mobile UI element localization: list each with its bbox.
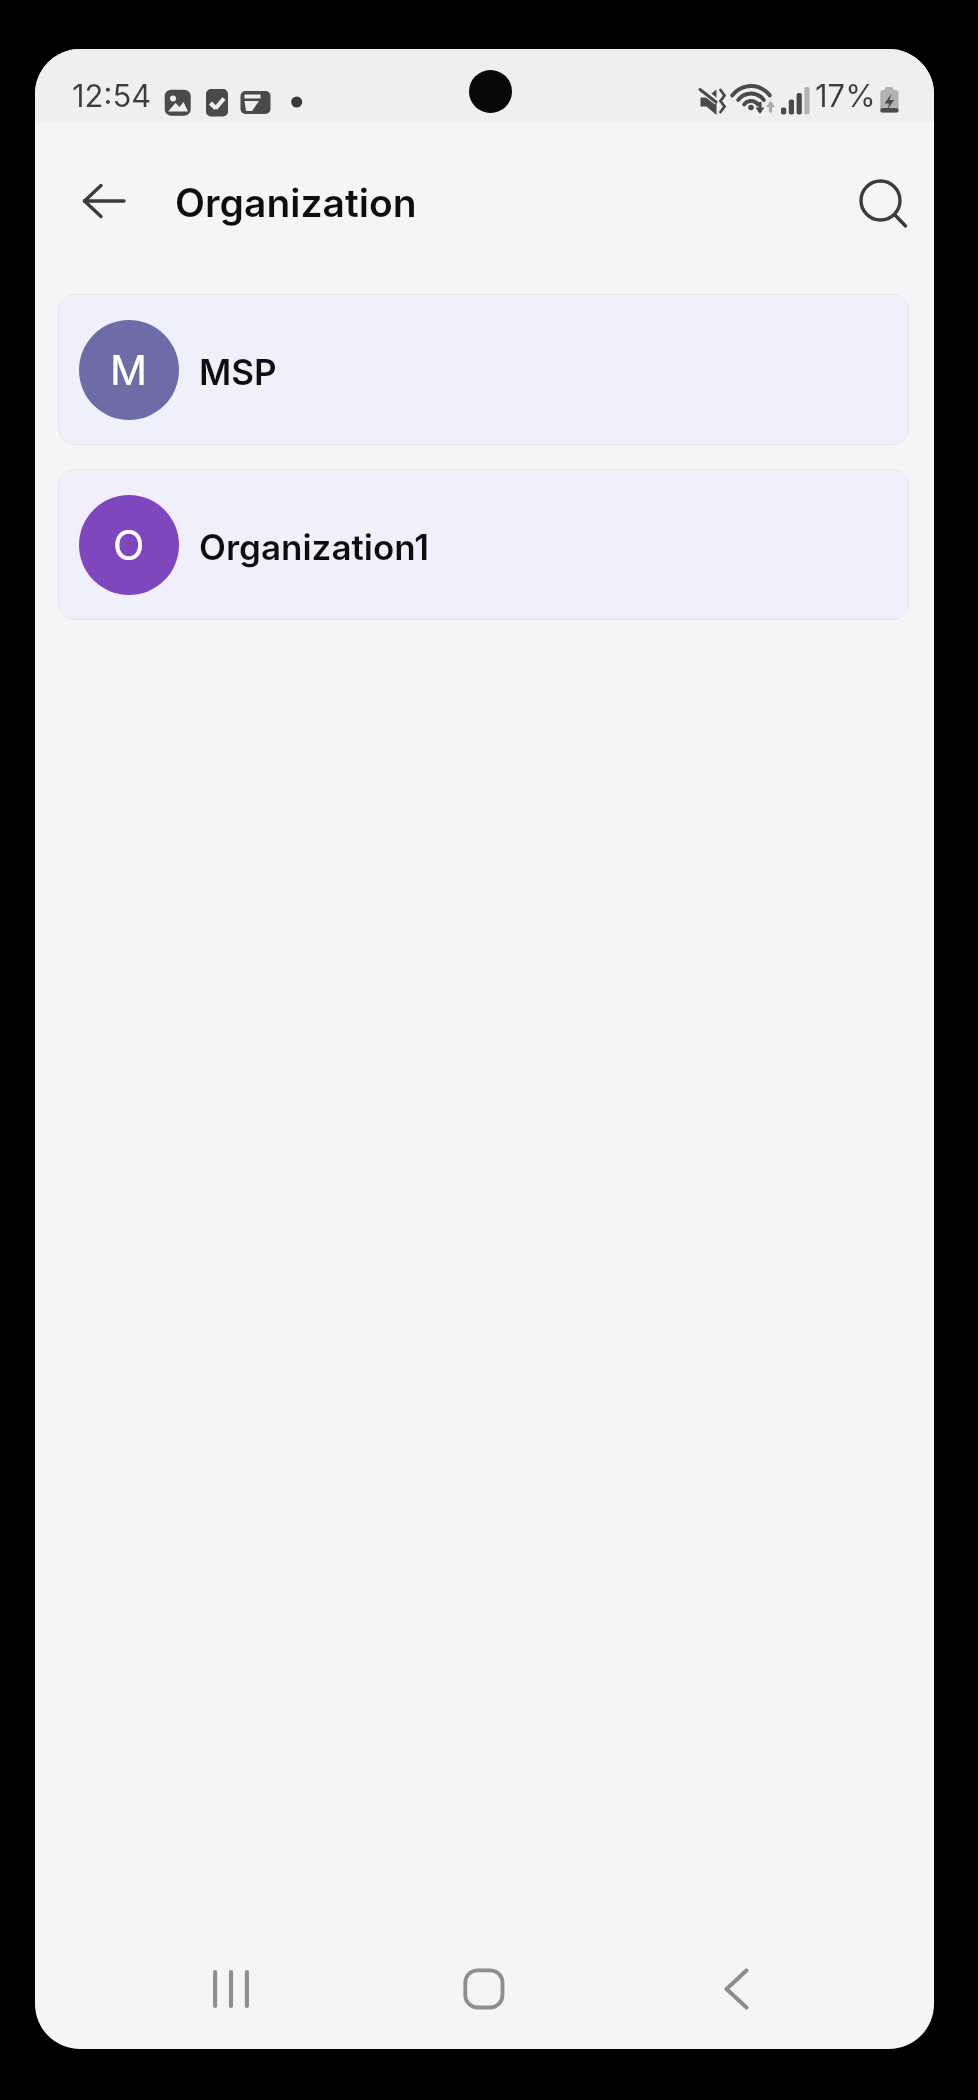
button[interactable]: Recent apps: [183, 1939, 283, 2039]
staticText: 12:54: [72, 77, 152, 115]
button[interactable]: Back: [687, 1939, 787, 2039]
button[interactable]: M: [58, 294, 909, 445]
button[interactable]: Home: [434, 1939, 534, 2039]
staticText: O: [113, 520, 145, 570]
staticText: MSP: [199, 351, 277, 393]
button[interactable]: Search: [834, 154, 934, 254]
button[interactable]: O: [58, 469, 909, 620]
staticText: 17%: [815, 77, 876, 115]
staticText: M: [110, 345, 148, 395]
button[interactable]: Back: [54, 151, 154, 251]
staticText: Organization: [175, 179, 417, 226]
staticText: Organization1: [199, 526, 430, 568]
